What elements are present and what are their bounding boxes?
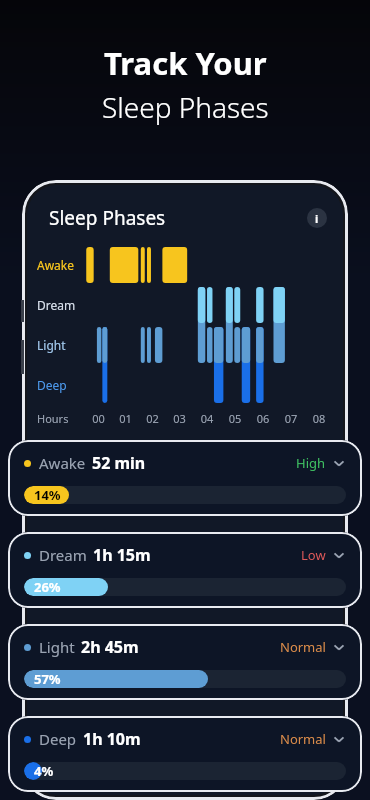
button[interactable]: Expand Dream: [332, 548, 346, 562]
staticText: Dream: [37, 297, 85, 313]
staticText: Normal: [280, 730, 326, 748]
staticText: 57%: [34, 670, 61, 688]
staticText: 07: [277, 411, 305, 426]
staticText: 00: [85, 411, 112, 426]
staticText: Sleep Phases: [102, 88, 269, 126]
staticText: 52 min: [92, 452, 146, 474]
staticText: 01: [112, 411, 139, 426]
staticText: Sleep Phases: [49, 205, 166, 231]
staticText: 26%: [34, 578, 61, 596]
staticText: 06: [249, 411, 277, 426]
staticText: i: [315, 211, 319, 226]
staticText: Light: [37, 337, 85, 353]
staticText: 02: [139, 411, 166, 426]
staticText: 1h 15m: [93, 544, 151, 566]
button[interactable]: Light: [8, 624, 362, 700]
staticText: Light: [39, 637, 75, 657]
staticText: Awake: [39, 453, 86, 473]
staticText: 05: [221, 411, 249, 426]
staticText: 4%: [34, 762, 54, 780]
button[interactable]: Dream: [8, 532, 362, 608]
staticText: Awake: [37, 257, 85, 273]
staticText: Track Your: [104, 42, 267, 84]
staticText: 2h 45m: [81, 636, 139, 658]
staticText: 08: [305, 411, 333, 426]
staticText: Hours: [37, 411, 85, 426]
button[interactable]: Awake: [8, 440, 362, 516]
staticText: 04: [193, 411, 221, 426]
staticText: Deep: [37, 377, 85, 393]
button[interactable]: Deep: [8, 716, 362, 792]
button[interactable]: Expand Awake: [332, 456, 346, 470]
button[interactable]: Info: [307, 208, 327, 228]
staticText: Deep: [39, 729, 77, 749]
staticText: 03: [166, 411, 193, 426]
staticText: 14%: [34, 486, 61, 504]
staticText: 1h 10m: [83, 728, 141, 750]
button[interactable]: Expand Light: [332, 640, 346, 654]
button[interactable]: Expand Deep: [332, 732, 346, 746]
staticText: Dream: [39, 545, 87, 565]
staticText: Normal: [280, 638, 326, 656]
staticText: High: [296, 454, 326, 472]
staticText: Low: [301, 546, 326, 564]
